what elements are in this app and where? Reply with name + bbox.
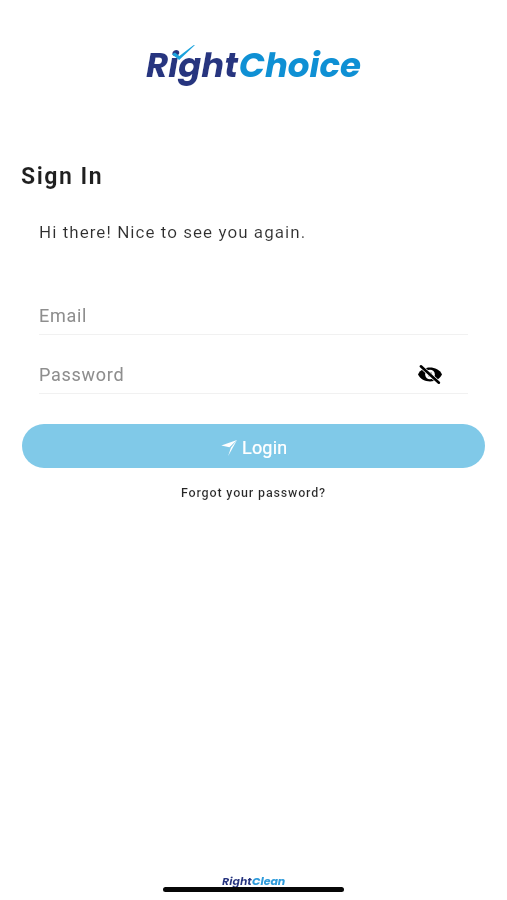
staticText: Sign In <box>21 163 104 190</box>
button[interactable]: Email <box>39 296 468 334</box>
staticText: Right <box>222 873 252 888</box>
button[interactable]: Show password <box>414 358 446 390</box>
staticText: Email <box>39 305 88 326</box>
button[interactable]: Password <box>39 355 468 393</box>
button[interactable]: Login <box>22 424 485 468</box>
button[interactable]: Forgot your password? <box>175 483 332 502</box>
staticText: Clean <box>252 873 286 888</box>
staticText: Choice <box>239 41 362 89</box>
staticText: Password <box>39 364 125 385</box>
staticText: Hi there! Nice to see you again. <box>39 222 307 242</box>
staticText: Right <box>146 41 239 89</box>
staticText: Login <box>242 437 288 458</box>
